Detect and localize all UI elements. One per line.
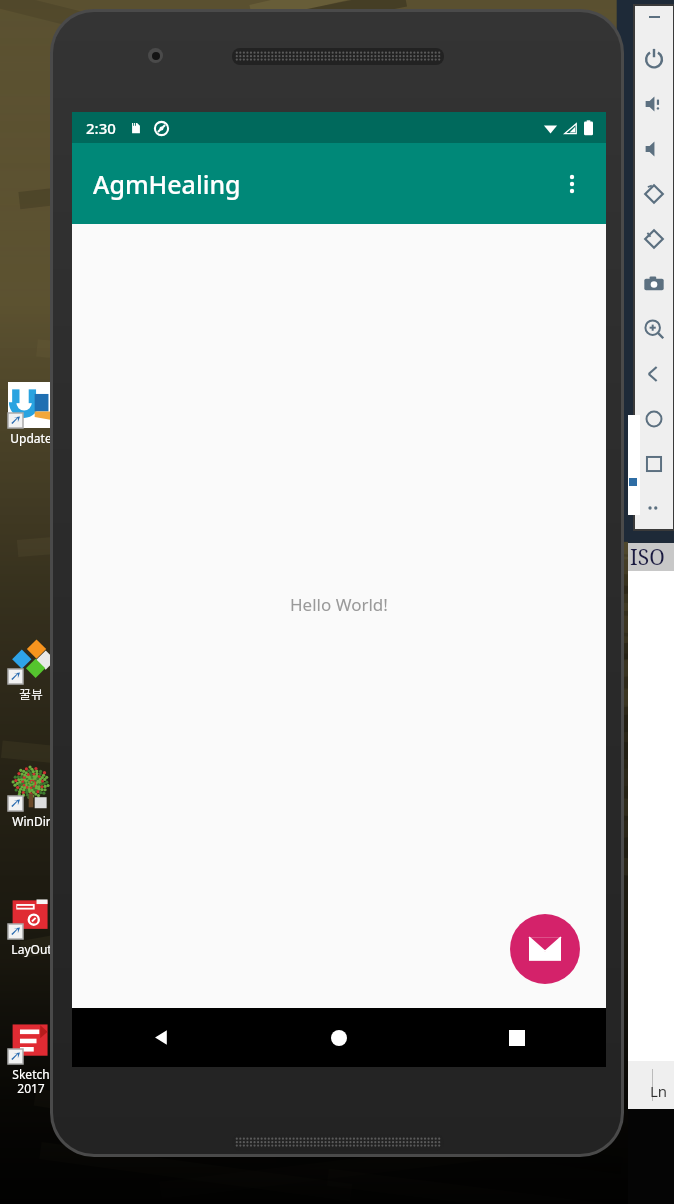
button[interactable]: Screenshot — [634, 261, 674, 306]
button[interactable]: LayOut — [6, 893, 56, 957]
staticText: 꿀뷰 — [19, 686, 43, 701]
button[interactable]: 꿀뷰 — [6, 638, 56, 701]
button[interactable]: Volume down — [634, 126, 674, 171]
button[interactable]: More — [634, 486, 674, 530]
button[interactable]: Sketch 2017 — [6, 1018, 56, 1097]
button[interactable]: Rotate right — [634, 216, 674, 261]
button[interactable]: Send email — [510, 914, 580, 984]
staticText: ISO — [630, 543, 665, 571]
button[interactable]: Back — [634, 351, 674, 396]
button[interactable]: Home — [250, 1008, 428, 1067]
button[interactable]: Volume up — [634, 81, 674, 126]
button[interactable]: Recent apps — [428, 1008, 606, 1067]
staticText: LayOut — [11, 941, 52, 957]
button[interactable]: Overview — [634, 441, 674, 486]
staticText: Sketch 2017 — [12, 1066, 50, 1097]
staticText: Ln — [650, 1081, 668, 1101]
staticText: Update — [10, 430, 52, 446]
button[interactable]: Back — [72, 1008, 250, 1067]
button[interactable]: WinDir — [6, 765, 56, 829]
staticText: WinDir — [12, 813, 51, 829]
button[interactable]: Power — [634, 36, 674, 81]
button[interactable]: Update — [6, 382, 56, 446]
button[interactable]: Home — [634, 396, 674, 441]
staticText: Hello World! — [290, 593, 388, 616]
button[interactable]: Zoom — [634, 306, 674, 351]
staticText: 2:30 — [86, 118, 116, 138]
button[interactable]: More options — [548, 160, 596, 208]
staticText: AgmHealing — [93, 167, 241, 201]
button[interactable]: Rotate left — [634, 171, 674, 216]
